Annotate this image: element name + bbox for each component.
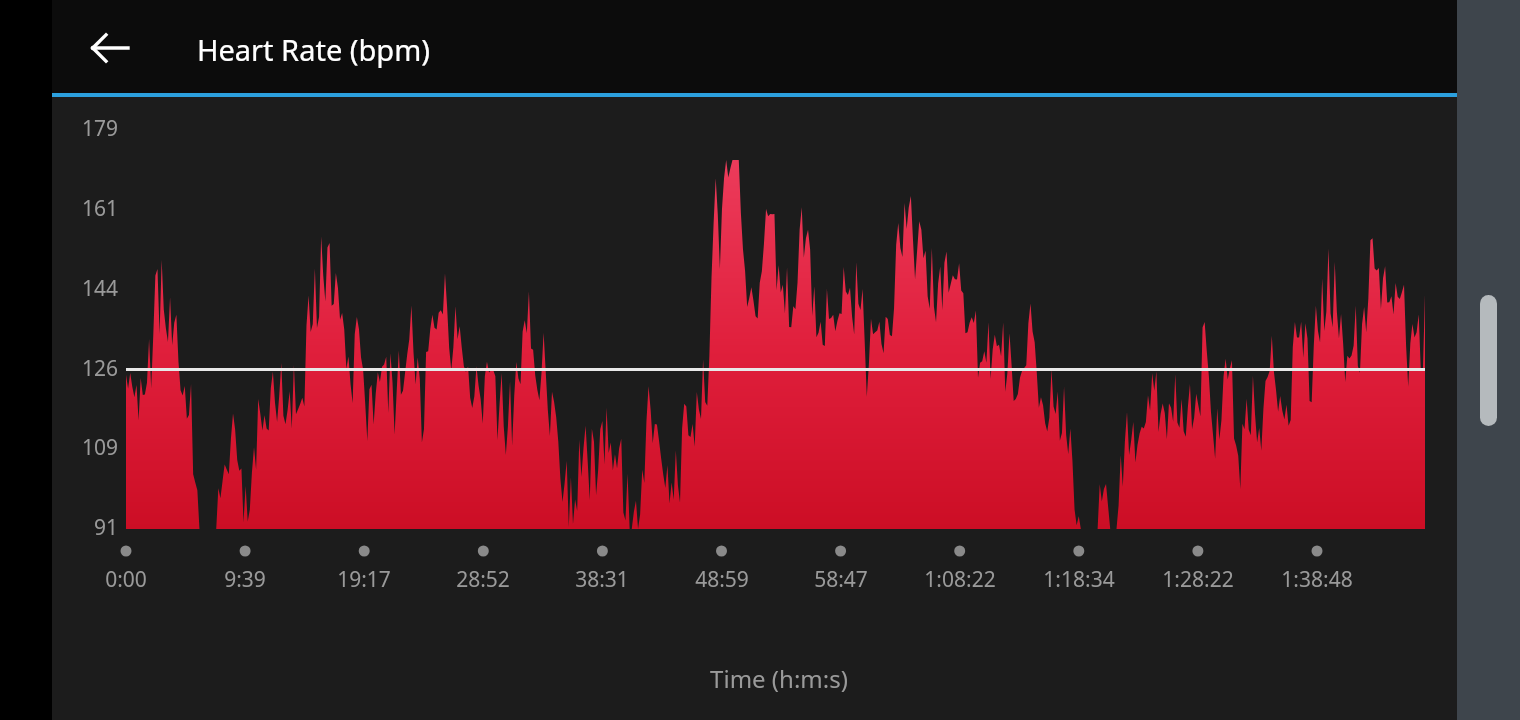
staticText: Heart Rate (bpm) xyxy=(197,30,430,69)
staticText: 1:08:22 xyxy=(900,565,1020,720)
staticText: 1:38:48 xyxy=(1257,565,1377,720)
staticText: 1:28:22 xyxy=(1138,565,1258,720)
staticText: 126 xyxy=(80,354,118,720)
staticText: 161 xyxy=(80,194,118,720)
staticText: 109 xyxy=(80,433,118,720)
button[interactable]: Scroll xyxy=(1480,295,1497,426)
staticText: Time (h:m:s) xyxy=(579,662,979,720)
staticText: 28:52 xyxy=(423,565,543,720)
staticText: 144 xyxy=(80,274,118,720)
button[interactable]: Back xyxy=(78,16,142,80)
staticText: 38:31 xyxy=(542,565,662,720)
staticText: 58:47 xyxy=(781,565,901,720)
staticText: 48:59 xyxy=(662,565,782,720)
staticText: 91 xyxy=(92,513,118,720)
staticText: 9:39 xyxy=(185,565,305,720)
staticText: 1:18:34 xyxy=(1019,565,1139,720)
staticText: 19:17 xyxy=(304,565,424,720)
staticText: 0:00 xyxy=(66,565,186,720)
staticText: 179 xyxy=(80,114,118,720)
